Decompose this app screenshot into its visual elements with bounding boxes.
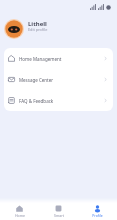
button[interactable]: Home <box>0 203 39 220</box>
button[interactable]: Smart <box>39 203 78 220</box>
staticText: Smart <box>54 213 64 218</box>
staticText: Edit profile <box>28 27 48 32</box>
staticText: Lithell <box>28 20 47 28</box>
staticText: Message Center <box>19 77 54 83</box>
button[interactable]: Message Center <box>4 69 113 90</box>
staticText: FAQ & Feedback <box>19 98 54 104</box>
button[interactable]: Home Management <box>4 48 113 69</box>
button[interactable]: Profile <box>78 203 117 220</box>
staticText: Home Management <box>19 56 62 62</box>
button[interactable]: FAQ & Feedback <box>4 90 113 111</box>
staticText: Profile <box>92 213 103 218</box>
staticText: Home <box>15 213 25 218</box>
